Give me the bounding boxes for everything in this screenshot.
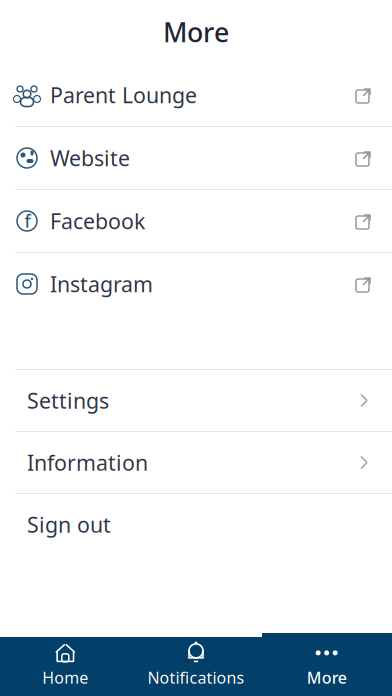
staticText: Home bbox=[42, 667, 88, 688]
staticText: Instagram bbox=[50, 270, 153, 298]
staticText: Website bbox=[50, 144, 130, 172]
staticText: More bbox=[307, 667, 347, 688]
button[interactable]: Settings bbox=[0, 370, 392, 431]
button[interactable]: Notifications bbox=[131, 637, 261, 693]
button[interactable]: f bbox=[0, 190, 392, 252]
button[interactable]: More bbox=[261, 637, 392, 693]
staticText: Settings bbox=[27, 386, 109, 415]
button[interactable]: Home bbox=[0, 637, 131, 693]
staticText: Information bbox=[27, 448, 148, 477]
button[interactable]: Information bbox=[0, 432, 392, 493]
staticText: Sign out bbox=[27, 510, 111, 539]
button[interactable]: Sign out bbox=[0, 494, 392, 555]
staticText: f bbox=[24, 209, 30, 232]
staticText: Parent Lounge bbox=[50, 81, 197, 109]
button[interactable]: Parent Lounge bbox=[0, 64, 392, 126]
staticText: Notifications bbox=[147, 667, 244, 688]
button[interactable]: Website bbox=[0, 127, 392, 189]
button[interactable]: Instagram bbox=[0, 253, 392, 315]
staticText: Facebook bbox=[50, 207, 145, 235]
staticText: More bbox=[163, 14, 229, 50]
